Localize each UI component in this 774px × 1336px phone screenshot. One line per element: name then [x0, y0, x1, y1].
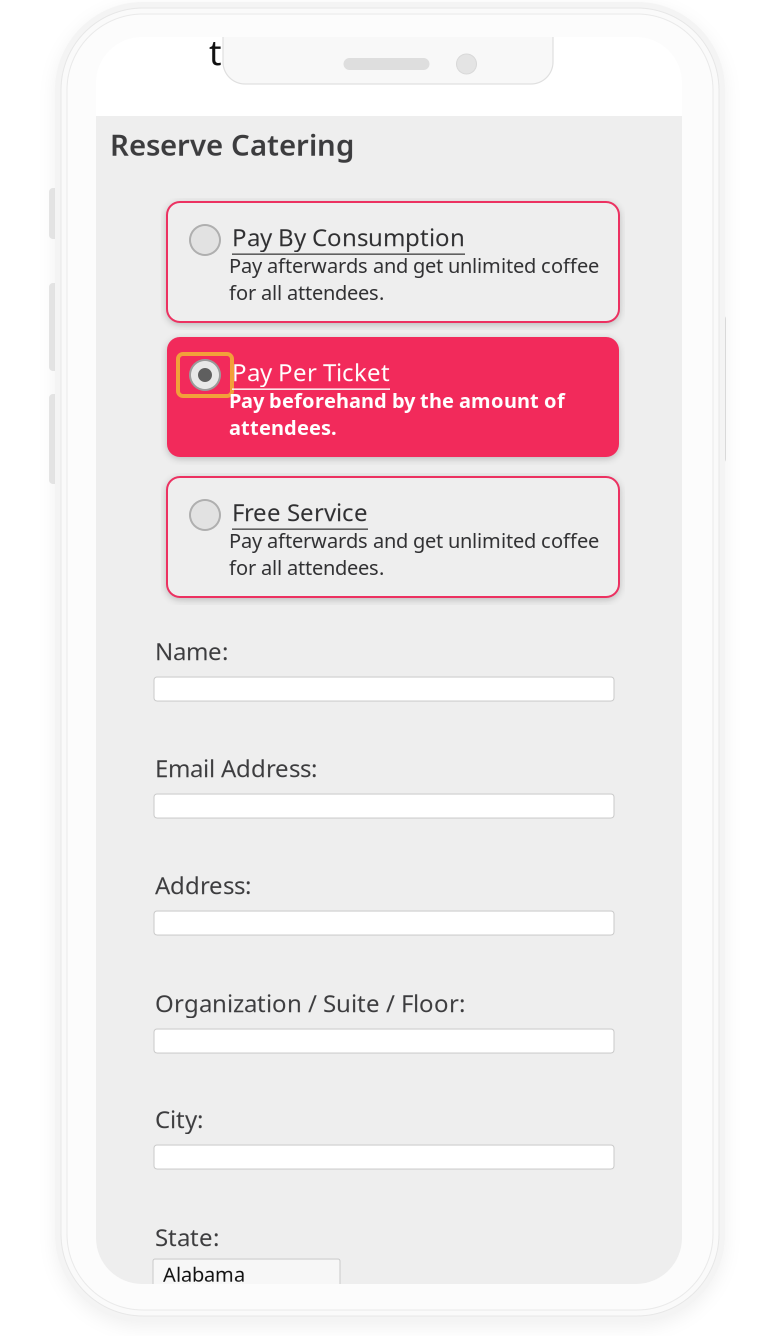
button[interactable]: Alabama [153, 1259, 340, 1289]
button[interactable] [154, 794, 614, 818]
staticText: City: [155, 1103, 203, 1135]
button[interactable] [154, 1145, 614, 1169]
staticText: Free Service [232, 496, 368, 528]
staticText: Pay afterwards and get unlimited coffee [229, 527, 599, 554]
staticText: for all attendees. [229, 279, 384, 306]
button[interactable] [154, 677, 614, 701]
staticText: attendees. [229, 414, 337, 441]
staticText: Reserve Catering [110, 125, 354, 164]
staticText: Email Address: [155, 752, 317, 784]
staticText: for all attendees. [229, 554, 384, 581]
staticText: State: [155, 1221, 219, 1253]
staticText: Pay beforehand by the amount of [229, 387, 565, 414]
button[interactable]: Pay By Consumption [167, 202, 619, 322]
button[interactable]: Pay Per Ticket [167, 337, 619, 457]
staticText: Organization / Suite / Floor: [155, 987, 465, 1019]
staticText: Pay Per Ticket [232, 356, 390, 388]
staticText: th [209, 29, 243, 75]
button[interactable] [154, 1029, 614, 1053]
staticText: Pay By Consumption [232, 221, 465, 253]
staticText: Name: [155, 635, 228, 667]
button[interactable] [154, 911, 614, 935]
button[interactable]: Free Service [167, 477, 619, 597]
staticText: Alabama [163, 1261, 245, 1287]
staticText: Address: [155, 869, 251, 901]
staticText: Pay afterwards and get unlimited coffee [229, 252, 599, 279]
